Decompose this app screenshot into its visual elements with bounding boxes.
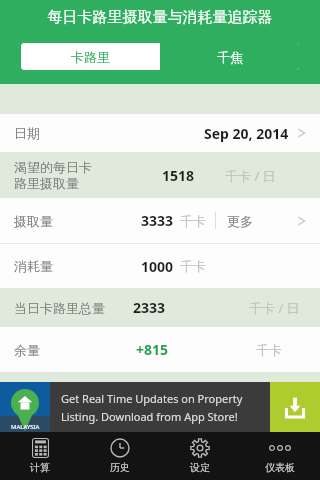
staticText: 日期 <box>14 125 40 141</box>
button[interactable]: 渴望的每日卡 <box>0 152 320 198</box>
button[interactable]: 余量 <box>0 327 320 372</box>
button[interactable]: Download <box>270 382 320 432</box>
staticText: 每日卡路里摄取量与消耗量追踪器 <box>0 8 320 27</box>
staticText: 设定 <box>190 461 210 474</box>
staticText: 千卡 / 日 <box>249 299 300 317</box>
staticText: 消耗量 <box>14 258 53 274</box>
button[interactable]: 仪表板 <box>240 432 320 480</box>
button[interactable]: Advertisement <box>0 382 320 432</box>
button[interactable]: 当日卡路里总量 <box>0 288 320 327</box>
staticText: 千卡 <box>256 342 282 358</box>
staticText: 仪表板 <box>265 461 295 474</box>
staticText: 千焦 <box>217 49 243 65</box>
staticText: 2333 <box>133 298 166 317</box>
staticText: 更多 <box>227 213 253 229</box>
staticText: 1518 <box>162 166 195 185</box>
staticText: 卡路里 <box>71 49 110 65</box>
button[interactable]: 摄取量 <box>0 198 320 243</box>
staticText: 渴望的每日卡 <box>14 159 92 175</box>
button[interactable]: 设定 <box>160 432 240 480</box>
staticText: 摄取量 <box>14 213 53 229</box>
staticText: 计算 <box>30 461 50 474</box>
staticText: 千卡 <box>180 258 206 274</box>
staticText: 余量 <box>14 342 40 358</box>
button[interactable]: 日期 <box>0 114 320 152</box>
button[interactable]: 卡路里 <box>21 43 160 70</box>
staticText: Listing. Download from App Store! <box>61 409 238 424</box>
button[interactable]: 历史 <box>80 432 160 480</box>
button[interactable]: 消耗量 <box>0 244 320 288</box>
staticText: Sep 20, 2014 <box>204 124 289 143</box>
staticText: 千卡 / 日 <box>225 167 276 185</box>
staticText: +815 <box>136 340 169 359</box>
staticText: 历史 <box>110 461 130 474</box>
button[interactable]: 千焦 <box>160 43 299 70</box>
staticText: 路里摄取量 <box>14 175 79 191</box>
staticText: 当日卡路里总量 <box>14 300 105 316</box>
staticText: Get Real Time Updates on Property <box>61 391 243 406</box>
staticText: 3333 <box>141 211 174 230</box>
staticText: MALAYSIA <box>11 423 40 431</box>
button[interactable]: 计算 <box>0 432 80 480</box>
staticText: 千卡 <box>180 213 206 229</box>
staticText: 1000 <box>141 257 174 276</box>
